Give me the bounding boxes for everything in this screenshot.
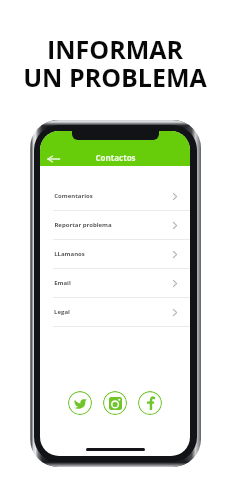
button[interactable]: Facebook	[138, 391, 162, 415]
staticText: Contactos	[95, 152, 136, 163]
staticText: Comentarios	[54, 192, 93, 200]
button[interactable]: Legal	[40, 298, 190, 327]
staticText: Email	[54, 279, 71, 287]
button[interactable]: Back	[47, 155, 60, 163]
button[interactable]: LLamanos	[40, 240, 190, 269]
staticText: Legal	[54, 308, 70, 316]
button[interactable]: Twitter	[68, 391, 92, 415]
button[interactable]: Comentarios	[40, 182, 190, 211]
button[interactable]: Instagram	[103, 391, 127, 415]
button[interactable]: Reportar problema	[40, 211, 190, 240]
button[interactable]: Email	[40, 269, 190, 298]
staticText: UN PROBLEMA	[0, 60, 230, 94]
staticText: INFORMAR	[0, 32, 230, 66]
staticText: Reportar problema	[54, 221, 112, 229]
staticText: LLamanos	[54, 250, 85, 258]
